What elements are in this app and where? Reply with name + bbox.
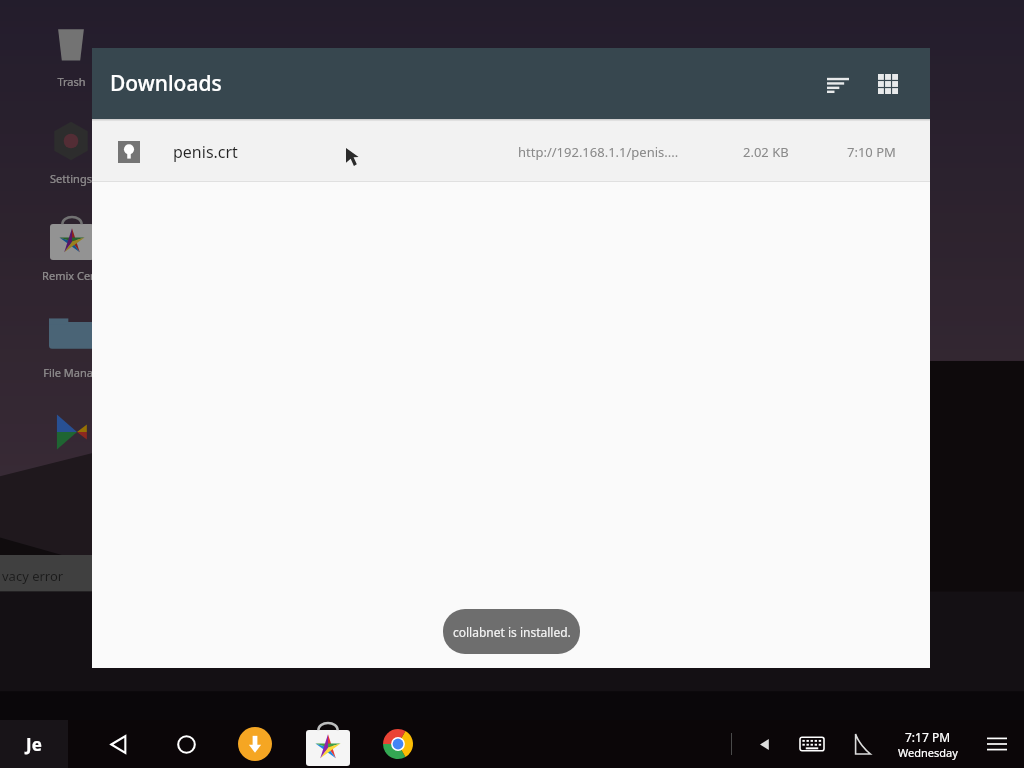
button[interactable]: Chrome bbox=[376, 722, 420, 766]
button[interactable]: Grid view bbox=[864, 60, 912, 108]
button[interactable]: Notifications bbox=[978, 725, 1016, 763]
button[interactable]: Trash bbox=[45, 18, 97, 89]
staticText: 7:10 PM bbox=[847, 143, 896, 161]
staticText: vacy error bbox=[2, 567, 64, 585]
staticText: Remix Cent bbox=[42, 268, 101, 283]
staticText: 2.02 KB bbox=[743, 143, 789, 161]
button[interactable]: Sort bbox=[814, 60, 862, 108]
staticText: http://192.168.1.1/penis.... bbox=[518, 143, 679, 161]
button[interactable]: Show hidden icons bbox=[750, 729, 780, 759]
button[interactable]: Home bbox=[162, 720, 210, 768]
button[interactable]: Start menu bbox=[0, 720, 68, 768]
staticText: Trash bbox=[57, 74, 86, 89]
button[interactable]: Back bbox=[94, 720, 142, 768]
button[interactable]: Keyboard bbox=[794, 726, 830, 762]
staticText: collabnet is installed. bbox=[453, 624, 571, 640]
button[interactable]: Screenshot bbox=[844, 726, 880, 762]
button[interactable] bbox=[45, 406, 97, 458]
staticText: Wednesday bbox=[898, 745, 958, 760]
staticText: Je bbox=[26, 733, 42, 756]
staticText: Downloads bbox=[110, 69, 222, 98]
button[interactable]: Remix Central bbox=[306, 722, 350, 766]
staticText: Settings bbox=[50, 171, 92, 186]
button[interactable]: Settings bbox=[45, 115, 97, 186]
button[interactable]: File Manag bbox=[43, 309, 100, 380]
button[interactable]: Remix Cent bbox=[42, 212, 101, 283]
button[interactable]: penis.crt bbox=[92, 122, 930, 181]
staticText: penis.crt bbox=[173, 141, 238, 163]
staticText: 7:17 PM bbox=[905, 729, 951, 745]
staticText: File Manag bbox=[43, 365, 100, 380]
button[interactable]: 7:17 PM bbox=[892, 729, 964, 760]
button[interactable]: Downloads app bbox=[232, 721, 278, 767]
